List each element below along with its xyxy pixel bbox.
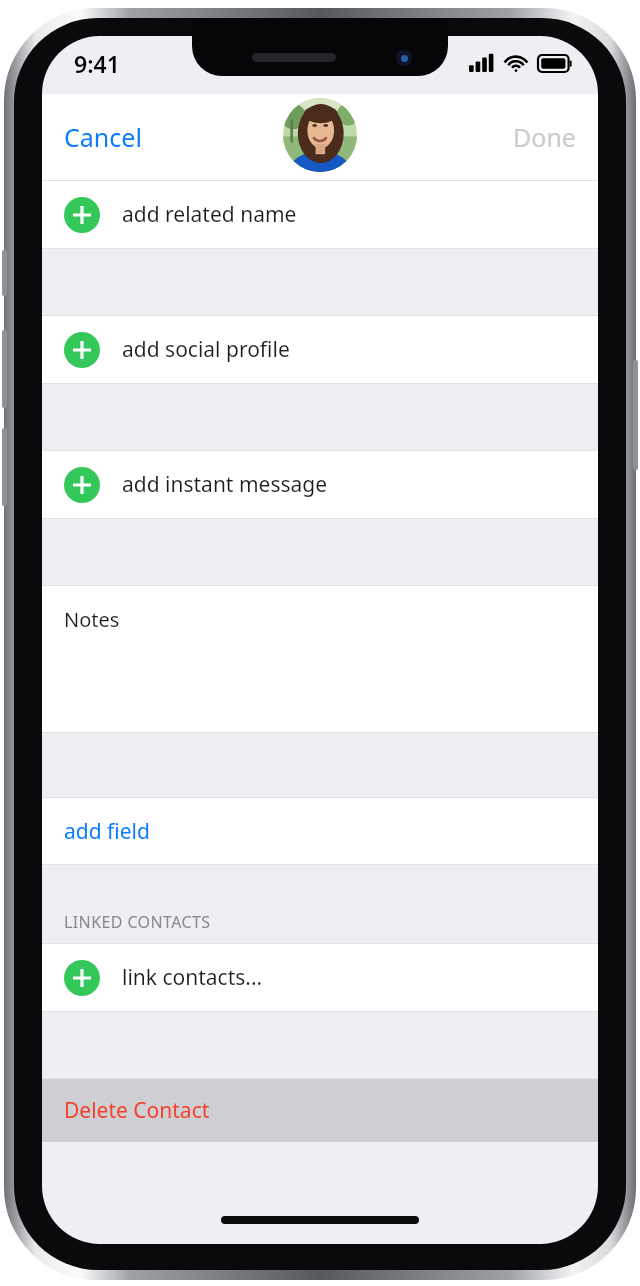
other: Add [64,467,100,503]
other: Add [64,960,100,996]
button[interactable]: Notes [42,586,598,732]
button[interactable]: Add [42,181,598,248]
button[interactable]: Done [499,110,598,164]
button[interactable]: add field [42,798,598,864]
staticText: add related name [122,200,297,229]
other: Add [64,332,100,368]
staticText: 9:41 [74,48,120,79]
staticText: link contacts... [122,963,263,992]
other: Add [64,197,100,233]
button[interactable]: Add [42,944,598,1011]
staticText: LINKED CONTACTS [64,911,211,933]
staticText: add social profile [122,335,290,364]
button[interactable]: Contact photo [283,98,357,172]
staticText: add instant message [122,470,328,499]
button[interactable]: Cancel [42,110,156,164]
staticText: Delete Contact [64,1096,210,1125]
staticText: add field [64,817,150,846]
staticText: Done [513,120,576,154]
button[interactable]: Add [42,316,598,383]
staticText: Notes [64,606,120,633]
staticText: Cancel [64,120,142,154]
button[interactable]: Delete Contact [42,1079,598,1142]
button[interactable]: Add [42,451,598,518]
